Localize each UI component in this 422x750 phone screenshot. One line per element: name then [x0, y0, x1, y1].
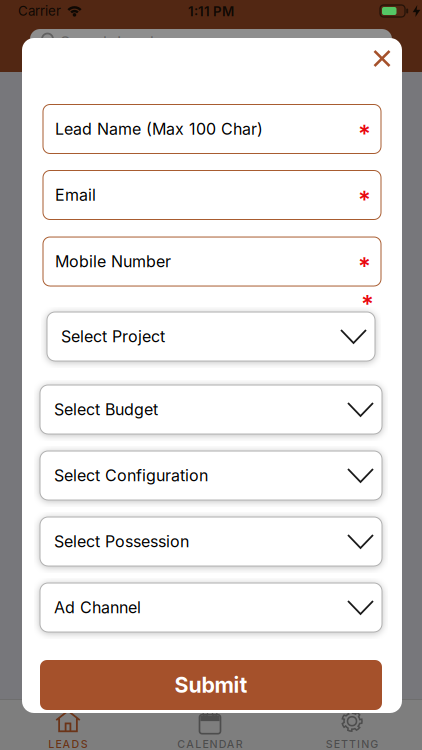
button[interactable]: Lead Name (Max 100 Char): [43, 104, 381, 153]
staticText: LEADS: [48, 738, 88, 750]
staticText: *: [358, 119, 371, 147]
staticText: Select Budget: [54, 400, 158, 419]
button[interactable]: Email: [43, 170, 381, 219]
staticText: Mobile Number: [55, 252, 171, 271]
staticText: *: [358, 185, 371, 213]
button[interactable]: LEADS: [8, 708, 128, 750]
staticText: CALENDAR: [177, 738, 243, 750]
button[interactable]: Select Budget: [40, 385, 382, 434]
staticText: Select Configuration: [54, 466, 208, 485]
button[interactable]: Select Possession: [40, 517, 382, 566]
staticText: *: [361, 289, 374, 317]
button[interactable]: CALENDAR: [150, 708, 270, 750]
button[interactable]: Search: [30, 29, 392, 65]
button[interactable]: Submit: [40, 660, 382, 710]
button[interactable]: Ad Channel: [40, 583, 382, 632]
staticText: SETTING: [326, 738, 378, 750]
staticText: Select Project: [61, 327, 165, 346]
button[interactable]: Close: [361, 38, 402, 79]
staticText: Email: [55, 186, 96, 204]
button[interactable]: Select Configuration: [40, 451, 382, 500]
button[interactable]: SETTING: [292, 708, 412, 750]
staticText: *: [358, 251, 371, 280]
staticText: 1:11 PM: [188, 3, 234, 19]
button[interactable]: Select Project: [47, 312, 375, 361]
staticText: Select Possession: [54, 532, 189, 551]
staticText: Ad Channel: [54, 598, 141, 617]
staticText: Submit: [174, 672, 247, 698]
button[interactable]: Mobile Number: [43, 237, 381, 286]
staticText: Search Leads: [60, 33, 162, 52]
staticText: Carrier: [18, 3, 61, 19]
staticText: Lead Name (Max 100 Char): [55, 120, 263, 138]
